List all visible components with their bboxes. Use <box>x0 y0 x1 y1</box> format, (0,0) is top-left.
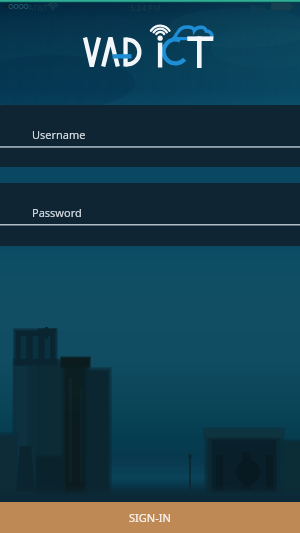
staticText: 5:24 PM <box>130 2 161 13</box>
button[interactable]: SIGN-IN <box>0 502 300 533</box>
staticText: AT&T <box>28 2 48 13</box>
staticText: 96% <box>250 2 267 13</box>
button[interactable]: Password field <box>0 183 300 246</box>
staticText: Password <box>32 205 82 220</box>
staticText: Username <box>32 127 86 142</box>
button[interactable]: Username field <box>0 105 300 167</box>
staticText: SIGN-IN <box>129 510 171 525</box>
